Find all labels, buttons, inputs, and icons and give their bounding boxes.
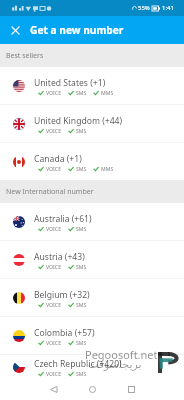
staticText: SMS: [76, 263, 87, 270]
button[interactable]: Colombia (+57): [0, 317, 184, 354]
button[interactable]: United States (+1): [0, 67, 184, 104]
button[interactable]: Austria (+43): [0, 241, 184, 278]
staticText: Colombia (+57): [34, 327, 95, 339]
staticText: SMS: [76, 89, 87, 96]
staticText: New International number: [6, 187, 94, 197]
button[interactable]: Belgium (+32): [0, 279, 184, 316]
staticText: SMS: [76, 339, 87, 346]
staticText: United States (+1): [34, 77, 106, 89]
staticText: Czech Republic (+420): [34, 358, 122, 370]
button[interactable]: Czech Republic (+420): [0, 355, 184, 378]
staticText: VOICE: [46, 127, 62, 134]
staticText: SMS: [76, 225, 87, 232]
button[interactable]: Home: [83, 380, 101, 398]
staticText: MMS: [101, 89, 114, 96]
staticText: SMS: [76, 165, 87, 172]
staticText: Get a new number: [30, 23, 124, 37]
staticText: Belgium (+32): [34, 289, 90, 301]
staticText: SMS: [76, 370, 87, 377]
staticText: VOICE: [46, 370, 62, 377]
button[interactable]: Close: [4, 19, 26, 41]
staticText: Australia (+61): [34, 213, 92, 225]
button[interactable]: Australia (+61): [0, 203, 184, 240]
staticText: SMS: [76, 301, 87, 308]
staticText: United Kingdom (+44): [34, 115, 123, 127]
staticText: SMS: [76, 127, 87, 134]
staticText: Canada (+1): [34, 153, 82, 165]
staticText: Pegoosoft.net: [85, 347, 158, 362]
staticText: VOICE: [46, 89, 62, 96]
staticText: Best sellers: [6, 51, 44, 61]
staticText: 1:41: [162, 4, 174, 12]
staticText: 55%: [138, 4, 150, 12]
button[interactable]: Back: [44, 380, 62, 398]
button[interactable]: Canada (+1): [0, 143, 184, 180]
staticText: VOICE: [46, 165, 62, 172]
staticText: VOICE: [46, 301, 62, 308]
staticText: VOICE: [46, 263, 62, 270]
button[interactable]: United Kingdom (+44): [0, 105, 184, 142]
staticText: بريجاسوفت: [88, 358, 142, 371]
staticText: MMS: [101, 165, 114, 172]
staticText: VOICE: [46, 339, 62, 346]
staticText: VOICE: [46, 225, 62, 232]
button[interactable]: Recents: [122, 380, 140, 398]
staticText: Austria (+43): [34, 251, 85, 263]
